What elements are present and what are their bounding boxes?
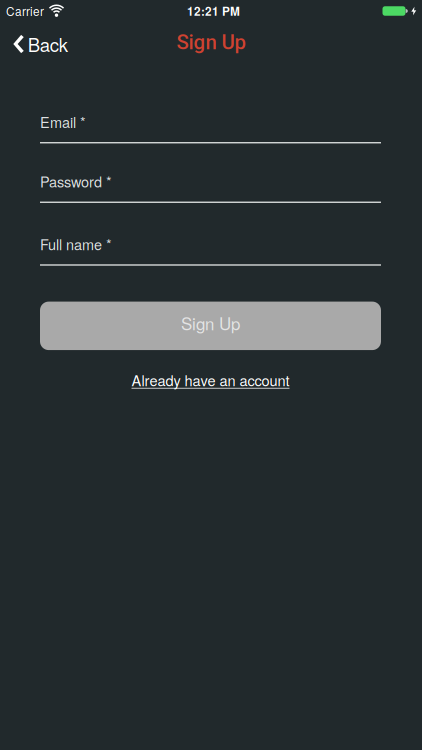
staticText: Back bbox=[28, 31, 68, 57]
staticText: 12:21 PM bbox=[187, 3, 240, 19]
button[interactable]: Full name * bbox=[40, 234, 381, 266]
button[interactable]: Email * bbox=[40, 111, 381, 143]
button[interactable]: Password * bbox=[40, 171, 381, 203]
button[interactable]: Back bbox=[0, 31, 68, 57]
staticText: Email * bbox=[40, 111, 86, 132]
button[interactable]: Already have an account bbox=[131, 370, 289, 390]
staticText: Sign Up bbox=[181, 311, 240, 335]
staticText: Carrier bbox=[6, 3, 44, 19]
button[interactable]: Sign Up bbox=[40, 302, 381, 350]
staticText: Password * bbox=[40, 171, 112, 192]
staticText: Full name * bbox=[40, 234, 112, 254]
staticText: Sign Up bbox=[176, 30, 245, 54]
staticText: Already have an account bbox=[131, 370, 289, 390]
